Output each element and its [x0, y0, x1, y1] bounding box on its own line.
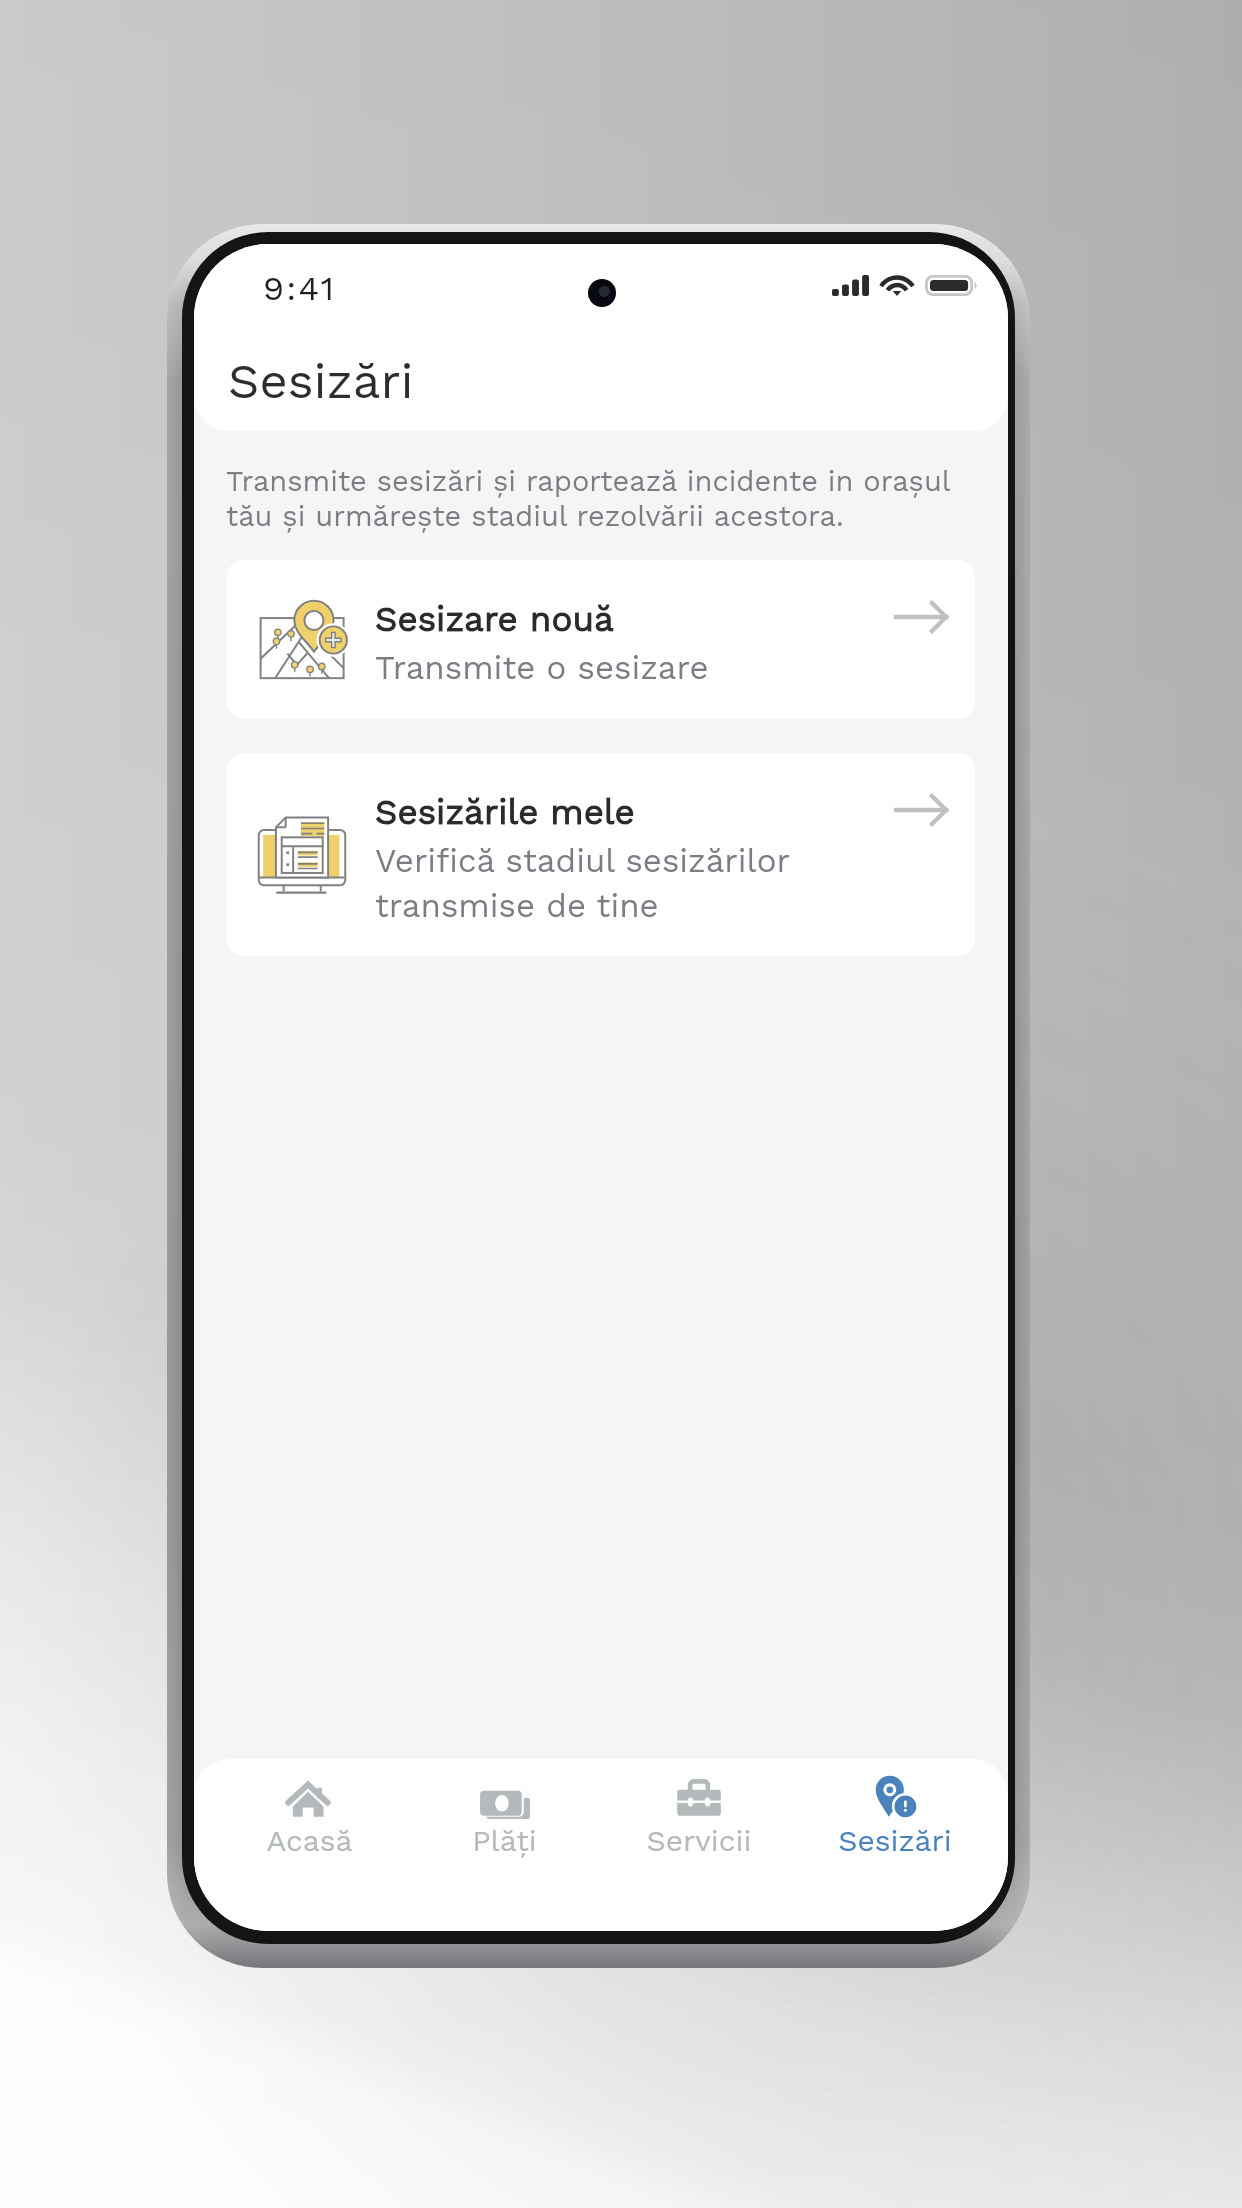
staticText: Servicii [646, 1823, 752, 1858]
button[interactable]: Plăți [414, 1770, 594, 1858]
staticText: Transmite o sesizare [375, 648, 845, 687]
button[interactable]: Sesizări [805, 1770, 985, 1858]
staticText: Sesizări [838, 1823, 952, 1858]
other: Sesizare nouă [895, 602, 947, 632]
button[interactable]: Sesizările mele [227, 753, 975, 956]
button[interactable]: Acasă [219, 1770, 399, 1858]
staticText: Transmite sesizări și raportează inciden… [226, 464, 971, 533]
button[interactable]: Sesizare nouă [227, 560, 975, 719]
staticText: Sesizare nouă [375, 598, 614, 639]
button[interactable]: Servicii [609, 1770, 789, 1858]
other: Sesizările mele [895, 795, 947, 825]
staticText: Sesizări [228, 352, 414, 409]
staticText: 9:41 [263, 268, 337, 308]
staticText: Acasă [266, 1823, 353, 1858]
staticText: Sesizările mele [375, 791, 635, 832]
staticText: Verifică stadiul sesizărilor transmise d… [375, 841, 845, 925]
other: Sesizări [869, 1770, 921, 1822]
staticText: Plăți [472, 1823, 537, 1858]
